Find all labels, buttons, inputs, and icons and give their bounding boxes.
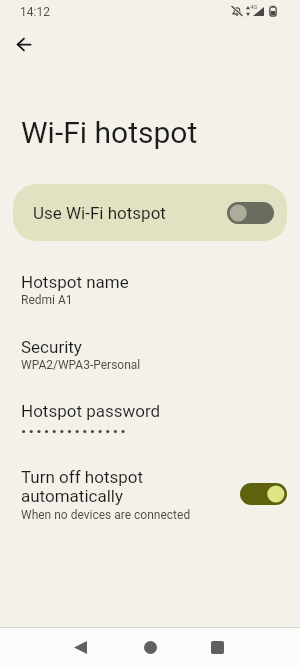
button[interactable]: Use Wi-Fi hotspot (13, 184, 287, 241)
staticText: Hotspot password (21, 401, 161, 421)
staticText: Redmi A1 (21, 293, 73, 307)
button[interactable]: Recent apps (197, 627, 238, 667)
button[interactable]: Hotspot password (0, 401, 300, 435)
button[interactable]: Home (130, 627, 171, 667)
staticText: 14:12 (20, 5, 50, 19)
button[interactable]: Turn off hotspot automatically (0, 465, 300, 523)
staticText: Hotspot name (21, 272, 129, 292)
button[interactable]: Toggle on (240, 483, 287, 505)
staticText: 4G (250, 3, 258, 10)
staticText: Use Wi-Fi hotspot (33, 203, 166, 223)
staticText: Wi-Fi hotspot (21, 115, 198, 150)
button[interactable]: Hotspot name (0, 272, 300, 307)
button[interactable]: Back (5, 26, 42, 63)
staticText: When no devices are connected (21, 508, 191, 522)
button[interactable]: Back (60, 627, 101, 667)
staticText: Turn off hotspot automatically (21, 467, 144, 506)
staticText: WPA2/WPA3-Personal (21, 358, 141, 372)
staticText: Security (21, 337, 82, 357)
button[interactable]: Security (0, 337, 300, 372)
button[interactable]: Toggle off (227, 202, 274, 224)
